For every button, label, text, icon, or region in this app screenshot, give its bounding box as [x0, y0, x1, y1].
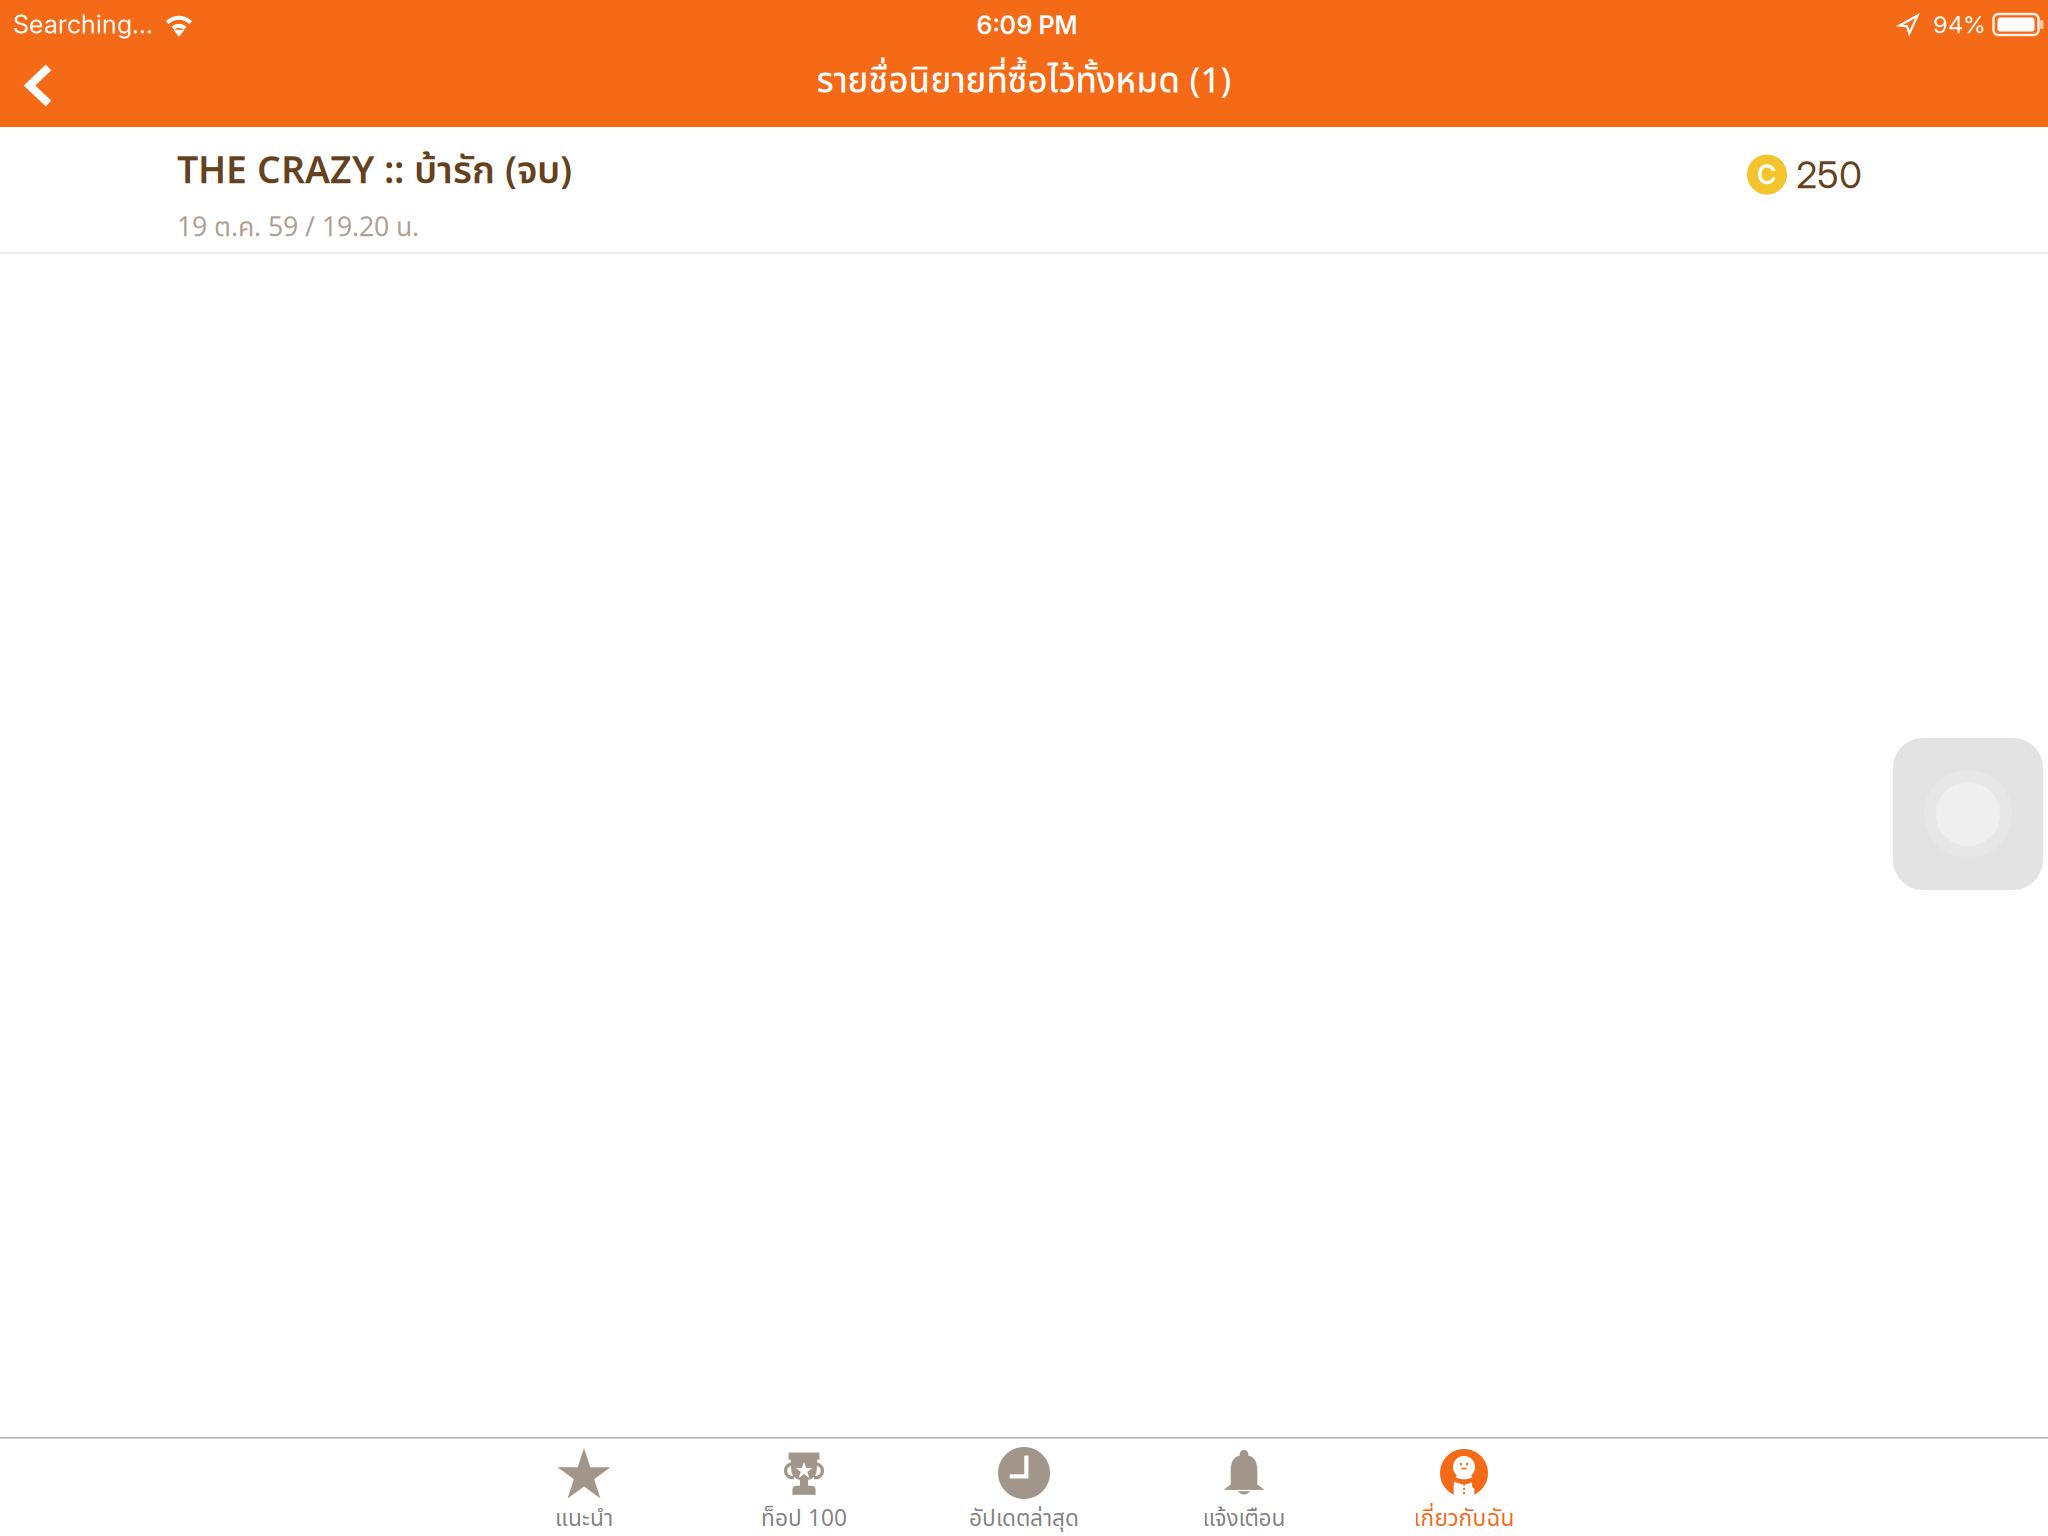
staticText: แจ้งเตือน — [1202, 1502, 1285, 1536]
button[interactable]: เกี่ยวกับฉัน — [1354, 1443, 1574, 1536]
staticText: เกี่ยวกับฉัน — [1413, 1502, 1514, 1536]
staticText: ท็อป 100 — [761, 1502, 847, 1536]
staticText: 6:09 PM — [976, 10, 1077, 40]
button[interactable]: แนะนำ — [474, 1443, 694, 1536]
button[interactable]: อัปเดตล่าสุด — [914, 1443, 1134, 1536]
staticText: 94% — [1933, 10, 1986, 39]
staticText: C — [1757, 158, 1777, 191]
staticText: อัปเดตล่าสุด — [969, 1502, 1079, 1536]
button[interactable]: แจ้งเตือน — [1134, 1443, 1354, 1536]
staticText: รายชื่อนิยายที่ซื้อไว้ทั้งหมด (1) — [816, 56, 1231, 108]
button[interactable]: AssistiveTouch — [1893, 738, 2043, 890]
staticText: 250 — [1796, 152, 1862, 197]
button[interactable]: ท็อป 100 — [694, 1443, 914, 1536]
staticText: 19 ต.ค. 59 / 19.20 น. — [177, 208, 419, 248]
button[interactable]: Back — [0, 48, 84, 123]
staticText: Searching... — [13, 9, 153, 40]
staticText: THE CRAZY :: บ้ารัก (จบ) — [177, 144, 572, 200]
button[interactable]: THE CRAZY :: บ้ารัก (จบ) — [177, 127, 1862, 253]
staticText: แนะนำ — [555, 1502, 613, 1536]
